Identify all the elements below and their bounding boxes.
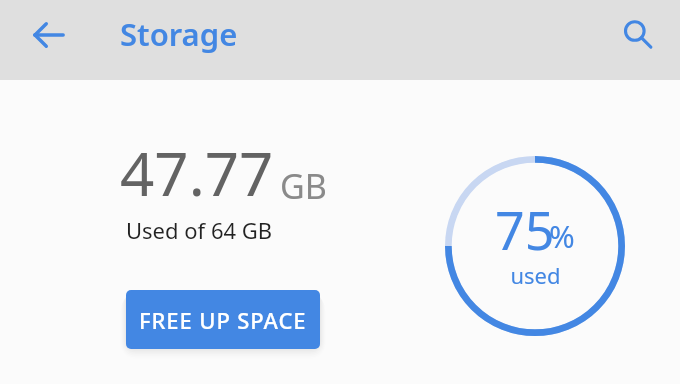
staticText: %	[549, 215, 575, 257]
button[interactable]: Back	[25, 11, 73, 59]
staticText: Used of 64 GB	[126, 215, 273, 245]
staticText: 47.77	[120, 132, 274, 214]
button[interactable]: FREE UP SPACE	[126, 290, 320, 349]
button[interactable]: Search	[614, 11, 662, 59]
staticText: 75	[495, 194, 555, 265]
staticText: FREE UP SPACE	[139, 305, 307, 335]
staticText: GB	[280, 163, 327, 209]
staticText: used	[510, 260, 561, 290]
staticText: Storage	[120, 13, 238, 55]
